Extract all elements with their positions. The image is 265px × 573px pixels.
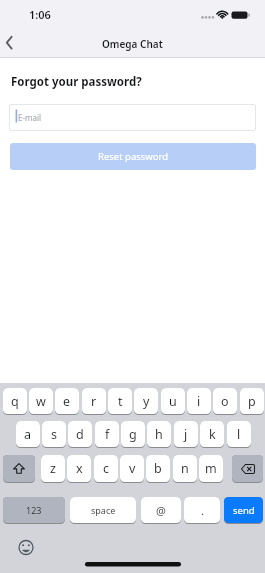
staticText: E-mail <box>18 112 42 123</box>
staticText: 1:06 <box>29 7 51 21</box>
staticText: v <box>129 460 136 477</box>
button[interactable]: i <box>187 388 211 414</box>
button[interactable]: E-mail <box>9 104 256 131</box>
staticText: k <box>209 426 216 443</box>
staticText: d <box>76 426 84 443</box>
staticText: j <box>184 426 188 443</box>
button[interactable]: s <box>42 421 66 447</box>
button[interactable]: u <box>161 388 185 414</box>
button[interactable]: q <box>3 388 27 414</box>
button[interactable]: w <box>29 388 53 414</box>
staticText: o <box>221 393 229 410</box>
staticText: w <box>36 393 46 410</box>
button[interactable]: n <box>173 455 197 482</box>
staticText: space <box>91 504 116 516</box>
button[interactable]: d <box>68 421 92 447</box>
staticText: x <box>76 460 83 477</box>
button[interactable]: g <box>121 421 145 447</box>
staticText: t <box>118 393 123 410</box>
button[interactable]: space <box>70 497 136 523</box>
button[interactable]: j <box>174 421 198 447</box>
button[interactable]: y <box>134 388 158 414</box>
button[interactable]: x <box>67 455 91 482</box>
staticText: c <box>103 460 110 477</box>
button[interactable]: p <box>240 388 264 414</box>
staticText: a <box>24 426 32 443</box>
staticText: m <box>205 460 217 477</box>
staticText: r <box>91 393 97 410</box>
button[interactable]: l <box>227 421 251 447</box>
button[interactable]: m <box>199 455 223 482</box>
staticText: 123 <box>26 504 42 516</box>
button[interactable]: h <box>147 421 171 447</box>
button[interactable]: c <box>94 455 118 482</box>
staticText: e <box>63 393 71 410</box>
button[interactable]: Reset password <box>10 143 256 170</box>
staticText: b <box>154 460 162 477</box>
button[interactable]: v <box>120 455 144 482</box>
staticText: h <box>155 426 163 443</box>
staticText: z <box>50 460 56 477</box>
staticText: n <box>181 460 189 477</box>
staticText: p <box>248 393 256 410</box>
button[interactable]: 123 <box>3 497 65 523</box>
staticText: Forgot your password? <box>11 74 142 90</box>
button[interactable]: a <box>16 421 40 447</box>
staticText: s <box>51 426 57 443</box>
staticText: l <box>237 426 241 443</box>
staticText: q <box>11 393 19 410</box>
button[interactable]: k <box>200 421 224 447</box>
staticText: f <box>105 426 110 443</box>
staticText: g <box>129 426 137 443</box>
button[interactable]: b <box>146 455 170 482</box>
staticText: Omega Chat <box>102 37 163 51</box>
button[interactable]: z <box>41 455 65 482</box>
staticText: Reset password <box>98 150 169 163</box>
button[interactable]: @ <box>141 497 181 523</box>
staticText: u <box>169 393 177 410</box>
button[interactable] <box>16 538 36 558</box>
staticText: @ <box>156 503 166 518</box>
staticText: . <box>201 503 204 518</box>
button[interactable] <box>232 455 263 482</box>
button[interactable]: t <box>108 388 132 414</box>
button[interactable] <box>3 455 35 482</box>
staticText: y <box>143 393 150 410</box>
staticText: i <box>197 393 201 410</box>
button[interactable] <box>0 31 28 57</box>
staticText: send <box>233 504 255 517</box>
button[interactable]: o <box>213 388 237 414</box>
button[interactable]: e <box>55 388 79 414</box>
button[interactable]: . <box>184 497 220 523</box>
button[interactable]: r <box>82 388 106 414</box>
button[interactable]: f <box>95 421 119 447</box>
button[interactable]: send <box>224 497 263 523</box>
